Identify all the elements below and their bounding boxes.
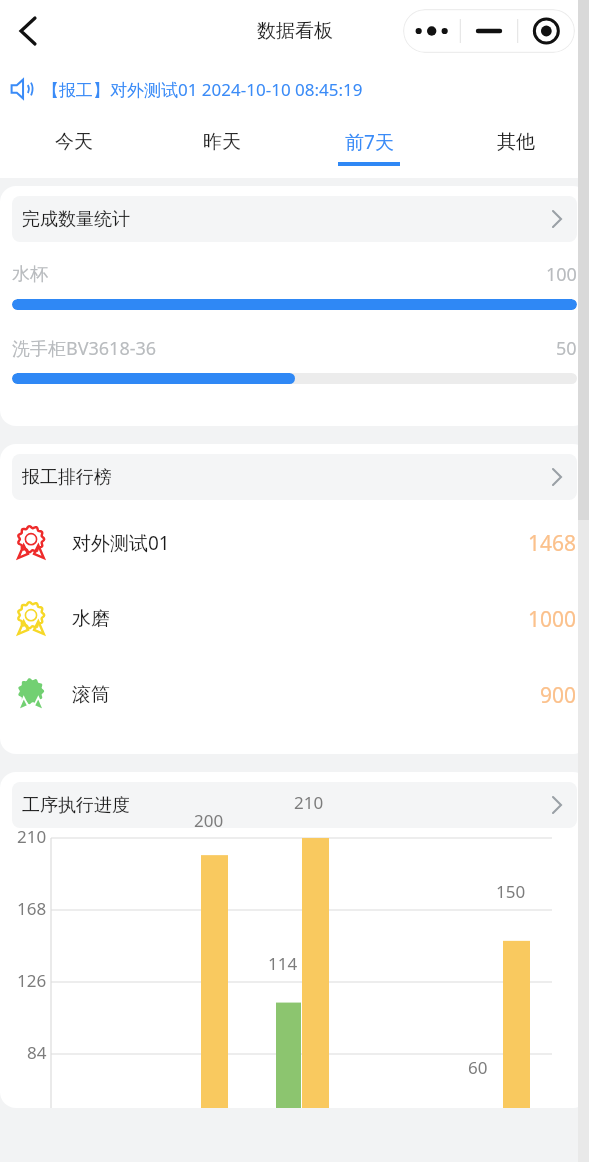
staticText: 60 (468, 1056, 488, 1079)
button[interactable]: 前7天 (295, 116, 442, 178)
staticText: 昨天 (203, 130, 241, 154)
staticText: 水杯 (12, 263, 48, 286)
button[interactable]: 昨天 (148, 116, 295, 178)
button[interactable]: Mini program menu (403, 9, 575, 53)
staticText: 工序执行进度 (22, 794, 130, 817)
staticText: 对外测试01 (72, 530, 170, 556)
staticText: 1000 (528, 605, 577, 634)
button[interactable]: 报工排行榜 (12, 454, 577, 500)
button[interactable]: 其他 (442, 116, 589, 178)
other: Announcement (9, 76, 35, 102)
staticText: 200 (194, 809, 224, 832)
staticText: 114 (268, 952, 298, 975)
button[interactable]: 对外测试01 (12, 522, 577, 564)
button[interactable]: 水磨 (12, 598, 577, 640)
staticText: 168 (17, 897, 47, 920)
button[interactable]: 今天 (0, 116, 148, 178)
staticText: 数据看板 (257, 19, 333, 43)
staticText: 其他 (497, 130, 535, 154)
staticText: 210 (294, 791, 324, 814)
staticText: 前7天 (345, 129, 394, 155)
staticText: 洗手柜BV3618-36 (12, 336, 157, 361)
staticText: 滚筒 (72, 683, 110, 707)
staticText: 报工排行榜 (22, 466, 112, 489)
button[interactable]: Back (4, 7, 52, 55)
staticText: 150 (496, 880, 526, 903)
button[interactable]: 滚筒 (12, 674, 577, 716)
button[interactable]: Announcement (0, 62, 589, 116)
button[interactable]: 工序执行进度 (12, 782, 577, 828)
staticText: 100 (546, 262, 577, 287)
button[interactable]: 完成数量统计 (12, 196, 577, 242)
staticText: 【报工】对外测试01 2024-10-10 08:45:19 (42, 78, 363, 101)
staticText: 1468 (528, 529, 577, 558)
staticText: 今天 (55, 130, 93, 154)
staticText: 84 (27, 1041, 47, 1064)
staticText: 50 (556, 336, 577, 361)
staticText: 126 (17, 969, 47, 992)
staticText: 210 (17, 825, 47, 848)
staticText: 水磨 (72, 607, 110, 631)
staticText: 900 (540, 681, 577, 710)
staticText: 完成数量统计 (22, 208, 130, 231)
